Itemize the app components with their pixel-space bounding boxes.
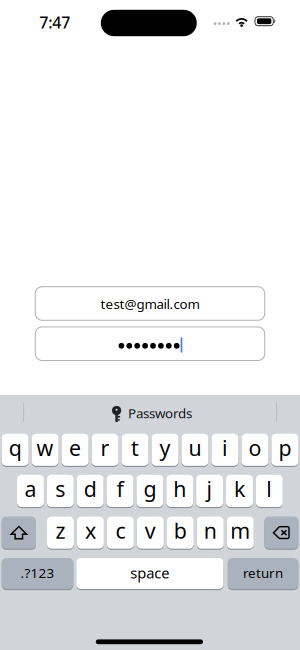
button[interactable]: u — [181, 434, 208, 466]
button[interactable]: m — [227, 516, 254, 549]
staticText: s — [55, 474, 65, 503]
staticText: a — [24, 474, 36, 503]
button[interactable]: Passwords — [67, 398, 237, 428]
staticText: g — [143, 474, 156, 503]
button[interactable]: s — [47, 475, 74, 507]
button[interactable]: d — [77, 475, 104, 507]
button[interactable]: x — [77, 516, 104, 549]
button[interactable]: test@gmail.com — [35, 287, 265, 320]
button[interactable]: Delete — [264, 516, 298, 549]
staticText: d — [84, 474, 97, 503]
button[interactable]: r — [92, 434, 118, 466]
staticText: z — [55, 516, 65, 544]
button[interactable]: y — [151, 434, 178, 466]
staticText: .?123 — [20, 564, 54, 582]
button[interactable]: t — [122, 434, 148, 466]
staticText: f — [116, 474, 123, 503]
button[interactable]: return — [228, 558, 298, 589]
staticText: w — [37, 433, 54, 462]
staticText: return — [243, 564, 283, 582]
button[interactable]: a — [17, 475, 44, 507]
button[interactable]: j — [196, 475, 223, 507]
staticText: Passwords — [128, 404, 192, 422]
button[interactable]: e — [62, 434, 88, 466]
button[interactable]: i — [211, 434, 238, 466]
button[interactable]: c — [107, 516, 134, 549]
staticText: j — [207, 474, 213, 503]
staticText: test@gmail.com — [100, 295, 199, 313]
staticText: 7:47 — [39, 12, 70, 33]
staticText: u — [188, 433, 201, 462]
button[interactable]: h — [166, 475, 193, 507]
staticText: n — [204, 516, 217, 544]
button[interactable]: space — [76, 558, 223, 589]
staticText: v — [145, 516, 156, 544]
button[interactable]: q — [2, 434, 29, 466]
button[interactable]: f — [107, 475, 133, 507]
button[interactable]: g — [136, 475, 163, 507]
staticText: r — [101, 433, 110, 462]
staticText: y — [159, 433, 170, 462]
staticText: c — [115, 516, 125, 544]
staticText: m — [230, 516, 250, 544]
staticText: p — [278, 433, 291, 462]
button[interactable]: b — [167, 516, 194, 549]
staticText: o — [248, 433, 261, 462]
staticText: l — [266, 474, 272, 503]
button[interactable]: k — [226, 475, 253, 507]
button[interactable]: w — [32, 434, 59, 466]
staticText: b — [174, 516, 187, 544]
button[interactable]: l — [256, 475, 283, 507]
staticText: q — [9, 433, 22, 462]
button[interactable]: o — [241, 434, 268, 466]
staticText: x — [85, 516, 96, 544]
staticText: h — [173, 474, 186, 503]
staticText: e — [69, 433, 81, 462]
button[interactable] — [35, 327, 265, 360]
button[interactable]: p — [271, 434, 298, 466]
staticText: space — [130, 563, 169, 583]
button[interactable]: .?123 — [2, 558, 73, 589]
button[interactable]: v — [137, 516, 164, 549]
button[interactable]: z — [47, 516, 74, 549]
staticText: k — [234, 474, 245, 503]
button[interactable]: Shift — [2, 516, 36, 549]
button[interactable]: n — [197, 516, 224, 549]
staticText: t — [131, 433, 139, 462]
staticText: i — [222, 433, 228, 462]
